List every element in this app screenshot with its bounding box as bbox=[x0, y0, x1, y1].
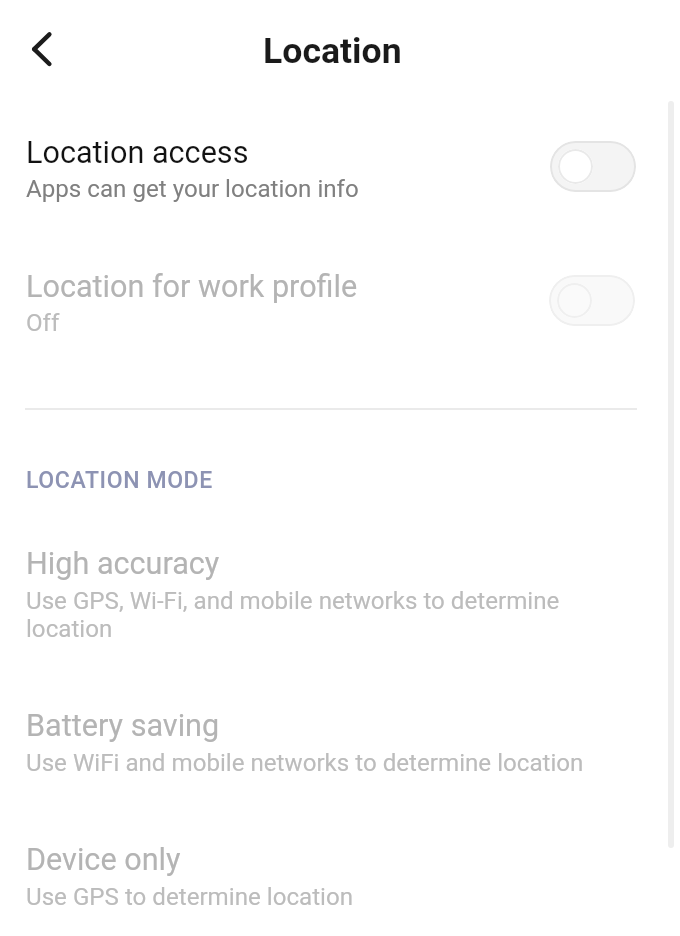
staticText: Location access bbox=[26, 135, 249, 171]
staticText: High accuracy bbox=[26, 546, 220, 582]
staticText: Location for work profile bbox=[26, 269, 358, 305]
staticText: Off bbox=[26, 309, 60, 337]
button[interactable]: Toggle bbox=[549, 275, 635, 326]
button[interactable]: Back bbox=[14, 22, 69, 77]
staticText: Location bbox=[263, 30, 402, 72]
button[interactable] bbox=[0, 254, 680, 350]
staticText: location bbox=[26, 615, 113, 643]
button[interactable] bbox=[0, 826, 680, 930]
staticText: Battery saving bbox=[26, 708, 220, 744]
staticText: Device only bbox=[26, 842, 181, 878]
staticText: Use GPS to determine location bbox=[26, 883, 354, 911]
button[interactable] bbox=[0, 692, 680, 796]
button[interactable] bbox=[0, 120, 680, 216]
staticText: Use WiFi and mobile networks to determin… bbox=[26, 749, 584, 777]
button[interactable]: Toggle bbox=[550, 141, 636, 192]
staticText: Use GPS, Wi-Fi, and mobile networks to d… bbox=[26, 587, 560, 615]
staticText: Apps can get your location info bbox=[26, 175, 359, 203]
staticText: LOCATION MODE bbox=[26, 467, 213, 494]
button[interactable] bbox=[0, 530, 680, 660]
